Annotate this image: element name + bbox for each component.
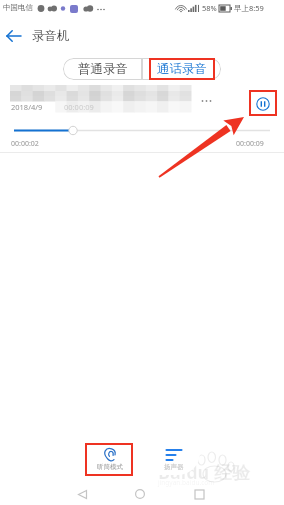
staticText: 早上8:59 [234,3,264,13]
button[interactable]: 通话录音 [142,58,221,80]
staticText: 听筒模式 [97,463,123,471]
staticText: 00:00:02 [11,139,39,149]
button[interactable]: Recents [187,482,211,505]
staticText: 2018/4/9 [11,102,43,112]
button[interactable]: Home [128,482,152,505]
button[interactable]: Speaker mode [158,447,190,475]
staticText: 中国电信 [3,3,33,12]
staticText: jingyan.baidu.com [158,478,215,487]
staticText: 通话录音 [157,61,207,77]
button[interactable]: 听筒模式 [88,447,131,475]
button[interactable]: Back [70,482,94,505]
button[interactable]: Back [2,24,26,48]
staticText: 00:00:09 [236,139,264,149]
button[interactable]: Pause [253,94,273,114]
staticText: 录音机 [32,28,70,44]
button[interactable]: 普通录音 [63,58,142,80]
staticText: Baidu 经验 [158,460,250,485]
staticText: 扬声器 [164,463,184,471]
staticText: 普通录音 [78,61,128,77]
staticText: 00:00:09 [64,102,94,112]
staticText: 58% [202,3,217,13]
